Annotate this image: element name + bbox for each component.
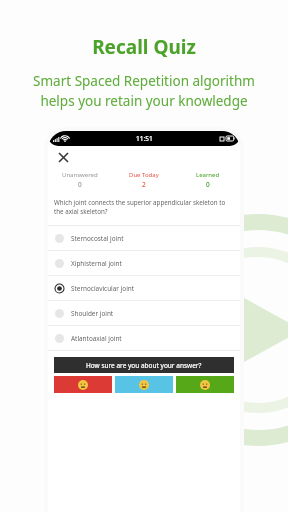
staticText: 0 bbox=[78, 180, 82, 189]
button[interactable]: Shoulder joint bbox=[48, 301, 240, 325]
staticText: Sternocostal joint bbox=[71, 234, 124, 243]
button[interactable]: Sternocostal joint bbox=[48, 226, 240, 250]
staticText: Which joint connects the superior append… bbox=[54, 198, 234, 216]
button[interactable]: Atlantoaxial joint bbox=[48, 326, 240, 350]
staticText: Learned bbox=[196, 171, 220, 179]
staticText: Smart Spaced Repetition algorithm helps … bbox=[33, 72, 255, 110]
button[interactable]: Learned bbox=[176, 171, 240, 189]
staticText: Recall Quiz bbox=[92, 34, 196, 60]
staticText: 0 bbox=[206, 180, 210, 189]
staticText: 11:51 bbox=[136, 134, 153, 143]
staticText: Unanswered bbox=[62, 171, 98, 179]
button[interactable]: Somewhat sure bbox=[115, 376, 173, 393]
button[interactable]: Sternoclavicular joint bbox=[48, 276, 240, 300]
button[interactable]: Unanswered bbox=[48, 171, 112, 189]
staticText: Sternoclavicular joint bbox=[71, 284, 135, 293]
staticText: Shoulder joint bbox=[71, 309, 114, 318]
staticText: How sure are you about your answer? bbox=[86, 361, 202, 370]
staticText: Xiphisternal joint bbox=[71, 259, 122, 268]
staticText: Atlantoaxial joint bbox=[71, 334, 122, 343]
button[interactable]: Close bbox=[54, 148, 72, 166]
button[interactable]: Xiphisternal joint bbox=[48, 251, 240, 275]
staticText: Due Today bbox=[129, 171, 159, 179]
button[interactable]: Very sure bbox=[176, 376, 234, 393]
staticText: 2 bbox=[142, 180, 146, 189]
button[interactable]: Not sure bbox=[54, 376, 112, 393]
button[interactable]: Due Today bbox=[112, 171, 176, 189]
